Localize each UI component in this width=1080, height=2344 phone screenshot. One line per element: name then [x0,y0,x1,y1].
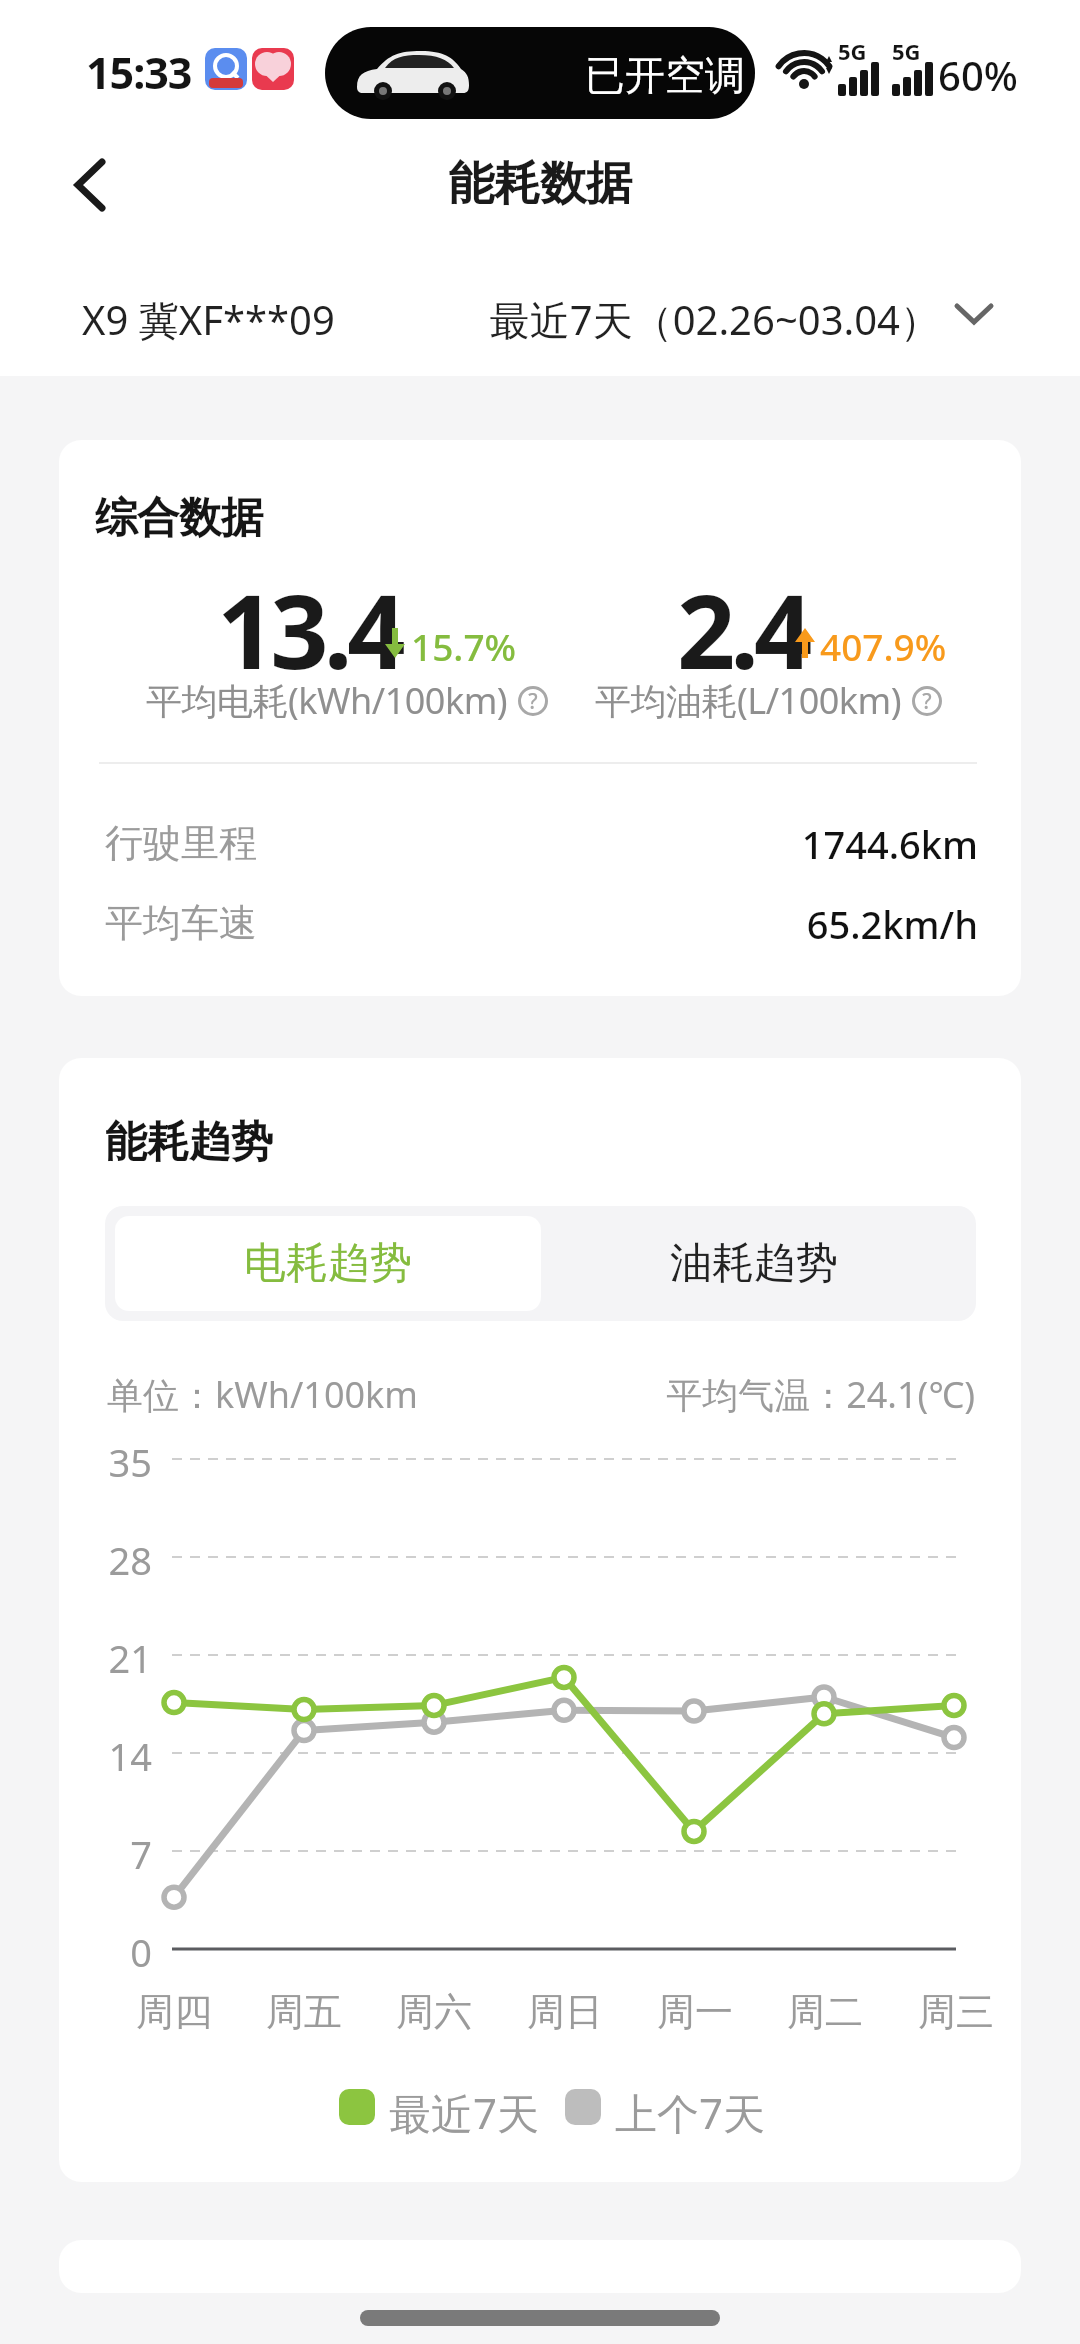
staticText: 15:33 [86,43,192,102]
staticText: 周四 [134,1988,214,2036]
staticText: 2.4 [677,560,808,699]
staticText: 28 [59,1534,152,1586]
staticText: 行驶里程 [105,819,257,867]
staticText: X9 冀XF***09 [82,292,335,347]
staticText: 综合数据 [95,492,263,545]
staticText: 油耗趋势 [670,1237,838,1290]
staticText: 已开空调 [585,50,745,100]
staticText: 15.7% [411,621,517,671]
staticText: 65.2km/h [59,898,978,950]
staticText: 35 [59,1436,152,1488]
staticText: 周一 [655,1988,735,2036]
staticText: 周三 [916,1988,996,2036]
staticText: 周六 [394,1988,474,2036]
staticText: 7 [59,1828,152,1880]
staticText: 21 [59,1632,152,1684]
staticText: 平均车速 [105,899,257,947]
button[interactable] [70,160,110,210]
staticText: 能耗数据 [0,155,1080,213]
staticText: 60% [938,48,1018,102]
staticText: 平均气温：24.1(℃) [59,1370,975,1419]
staticText: 周日 [525,1988,605,2036]
staticText: 电耗趋势 [244,1237,412,1290]
staticText: 单位：kWh/100km [107,1370,419,1419]
staticText: 上个7天 [615,2084,766,2141]
staticText: 周五 [264,1988,344,2036]
staticText: 5G [838,36,867,66]
staticText: 13.4 [217,560,401,699]
staticText: 1744.6km [59,818,978,870]
staticText: 能耗趋势 [105,1116,273,1169]
staticText: 5G [892,36,921,66]
staticText: ? [518,687,548,716]
button[interactable]: 油耗趋势 [541,1216,966,1311]
staticText: 平均电耗(kWh/100km) [146,676,508,725]
button[interactable]: 电耗趋势 [115,1216,541,1311]
staticText: 周二 [785,1988,865,2036]
staticText: 最近7天（02.26~03.04） [400,292,940,347]
staticText: 最近7天 [389,2084,540,2141]
staticText: 平均油耗(L/100km) [595,676,902,725]
staticText: ? [912,687,942,716]
button[interactable]: 最近7天（02.26~03.04） [400,280,1000,350]
staticText: 407.9% [820,621,947,671]
staticText: 14 [59,1730,152,1782]
staticText: 0 [59,1926,152,1978]
